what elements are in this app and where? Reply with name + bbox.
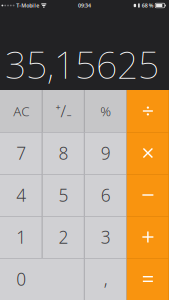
- button[interactable]: divide: [127, 90, 169, 132]
- button[interactable]: multiply: [127, 132, 169, 174]
- button[interactable]: equals: [127, 258, 169, 300]
- staticText: 4: [16, 183, 26, 206]
- staticText: %: [100, 102, 111, 120]
- button[interactable]: 7: [0, 132, 42, 174]
- staticText: ,: [104, 267, 108, 290]
- button[interactable]: plus minus: [42, 90, 84, 132]
- button[interactable]: AC: [0, 90, 42, 132]
- staticText: AC: [13, 102, 29, 120]
- staticText: 3: [101, 225, 111, 248]
- button[interactable]: 9: [84, 132, 127, 174]
- button[interactable]: 2: [42, 216, 84, 258]
- button[interactable]: 1: [0, 216, 42, 258]
- staticText: 35,15625: [5, 39, 159, 89]
- button[interactable]: 8: [42, 132, 84, 174]
- staticText: ⁺/₋: [55, 100, 71, 122]
- button[interactable]: %: [84, 90, 127, 132]
- staticText: 0: [16, 267, 26, 290]
- staticText: 68 %: [142, 2, 154, 9]
- staticText: 1: [16, 225, 26, 248]
- button[interactable]: 4: [0, 174, 42, 216]
- button[interactable]: 3: [84, 216, 127, 258]
- staticText: 2: [58, 225, 68, 248]
- staticText: 7: [16, 141, 26, 164]
- button[interactable]: 6: [84, 174, 127, 216]
- staticText: 09:34: [78, 2, 91, 9]
- staticText: 5: [58, 183, 68, 206]
- button[interactable]: minus: [127, 174, 169, 216]
- staticText: 8: [58, 141, 68, 164]
- button[interactable]: 0: [0, 258, 84, 300]
- button[interactable]: 5: [42, 174, 84, 216]
- staticText: 9: [101, 141, 111, 164]
- button[interactable]: plus: [127, 216, 169, 258]
- button[interactable]: decimal separator: [84, 258, 127, 300]
- staticText: T-Mobile: [16, 2, 39, 9]
- staticText: 6: [101, 183, 111, 206]
